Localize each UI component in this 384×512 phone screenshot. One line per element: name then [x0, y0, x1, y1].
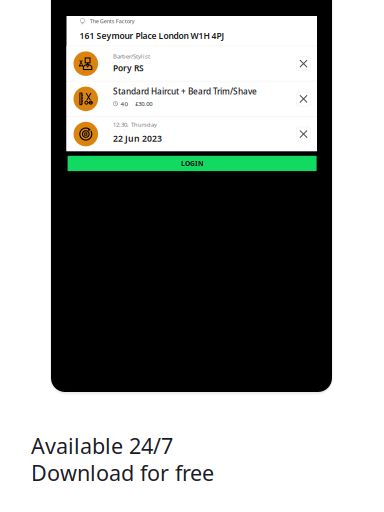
button[interactable]: LOGIN: [68, 156, 317, 171]
staticText: LOGIN: [181, 159, 203, 168]
staticText: 22 Jun 2023: [113, 133, 162, 144]
button[interactable]: Remove appointment time: [295, 125, 312, 142]
button[interactable]: Remove service: [295, 90, 312, 107]
staticText: The Gents Factory: [90, 17, 135, 25]
staticText: Barber/Stylist: [113, 52, 150, 60]
staticText: £30.00: [135, 100, 152, 108]
staticText: Download for free: [31, 458, 214, 487]
staticText: Pory RS: [113, 62, 144, 74]
button[interactable]: Remove barber: [295, 55, 312, 72]
staticText: Available 24/7: [31, 431, 173, 460]
staticText: 12:30, Thursday: [113, 121, 157, 128]
staticText: Standard Haircut + Beard Trim/Shave: [113, 86, 257, 97]
staticText: 40: [121, 100, 129, 108]
staticText: 161 Seymour Place London W1H 4PJ: [79, 30, 224, 41]
